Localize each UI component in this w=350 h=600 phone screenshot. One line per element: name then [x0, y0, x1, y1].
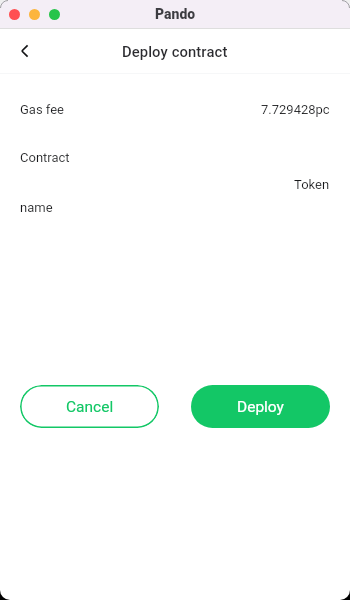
staticText: name — [20, 200, 53, 215]
staticText: Contract — [20, 150, 70, 165]
button[interactable]: Cancel — [20, 385, 159, 428]
staticText: Deploy contract — [122, 43, 228, 60]
staticText: 7.729428pc — [261, 102, 330, 117]
button[interactable]: Minimise window — [29, 9, 40, 20]
staticText: Gas fee — [20, 102, 65, 117]
staticText: Pando — [155, 6, 196, 22]
button[interactable]: Back — [8, 34, 42, 68]
staticText: Token — [294, 177, 330, 192]
button[interactable]: Close window — [9, 9, 20, 20]
button[interactable]: Maximise window — [49, 9, 60, 20]
button[interactable]: Deploy — [191, 385, 330, 428]
staticText: Deploy — [237, 398, 284, 416]
staticText: Cancel — [66, 398, 114, 416]
